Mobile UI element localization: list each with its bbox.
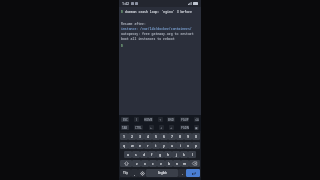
button[interactable]: ESC bbox=[121, 117, 129, 122]
button[interactable]: ↓ bbox=[159, 125, 164, 130]
staticText: ESC bbox=[123, 118, 128, 122]
staticText: autoproxy: free gateway.org to restart bbox=[121, 32, 194, 36]
button[interactable]: CTRL bbox=[134, 125, 143, 130]
staticText: m bbox=[183, 161, 187, 166]
staticText: → bbox=[170, 126, 173, 129]
staticText: r bbox=[147, 143, 149, 148]
staticText: y bbox=[163, 143, 165, 148]
button[interactable]: 9 bbox=[184, 133, 192, 140]
staticText: q bbox=[123, 143, 126, 148]
staticText: t bbox=[155, 143, 157, 148]
button[interactable]: 6 bbox=[160, 133, 168, 140]
staticText: , bbox=[134, 171, 135, 176]
staticText: j bbox=[176, 152, 177, 157]
button[interactable]: $ bbox=[119, 7, 201, 115]
button[interactable]: c bbox=[149, 160, 157, 167]
button[interactable]: . bbox=[178, 169, 186, 177]
button[interactable]: n bbox=[173, 160, 181, 167]
staticText: CTRL bbox=[135, 126, 142, 130]
staticText: e bbox=[139, 143, 141, 148]
button[interactable]: Shift bbox=[120, 160, 132, 167]
staticText: daemon crash loop: 'nginx' 3 before rest… bbox=[125, 10, 199, 14]
button[interactable]: Settings bbox=[138, 169, 146, 177]
button[interactable]: TAB bbox=[121, 125, 129, 130]
button[interactable]: ↑ bbox=[158, 117, 163, 122]
button[interactable]: p bbox=[192, 142, 200, 149]
button[interactable]: ← bbox=[149, 125, 154, 130]
button[interactable]: w bbox=[128, 142, 136, 149]
button[interactable]: l bbox=[188, 151, 196, 158]
button[interactable]: i bbox=[176, 142, 184, 149]
button[interactable]: ?1☺ bbox=[120, 169, 131, 177]
button[interactable]: e bbox=[136, 142, 144, 149]
staticText: / bbox=[136, 118, 138, 122]
button[interactable]: , bbox=[131, 169, 138, 177]
staticText: HOME bbox=[144, 118, 153, 122]
button[interactable]: / bbox=[134, 117, 139, 122]
staticText: c bbox=[152, 161, 154, 166]
button[interactable]: y bbox=[160, 142, 168, 149]
button[interactable]: PGDN bbox=[180, 125, 189, 130]
button[interactable]: 3 bbox=[136, 133, 144, 140]
button[interactable]: m bbox=[181, 160, 189, 167]
button[interactable]: q bbox=[120, 142, 128, 149]
staticText: boot all instances to reboot bbox=[121, 37, 175, 41]
button[interactable]: ▣ bbox=[194, 125, 199, 130]
button[interactable]: HOME bbox=[144, 117, 153, 122]
staticText: p bbox=[195, 143, 198, 148]
staticText: z bbox=[136, 161, 138, 166]
button[interactable]: g bbox=[156, 151, 164, 158]
button[interactable]: j bbox=[172, 151, 180, 158]
staticText: 0 bbox=[195, 134, 197, 139]
staticText: d bbox=[143, 152, 146, 157]
button[interactable]: 2 bbox=[128, 133, 136, 140]
button[interactable]: k bbox=[180, 151, 188, 158]
button[interactable]: 8 bbox=[176, 133, 184, 140]
button[interactable]: ⌫ bbox=[194, 117, 199, 122]
staticText: n bbox=[176, 161, 179, 166]
staticText: $ bbox=[121, 10, 125, 14]
button[interactable]: 7 bbox=[168, 133, 176, 140]
staticText: $ bbox=[121, 44, 123, 48]
staticText: l bbox=[192, 152, 193, 157]
button[interactable]: END bbox=[167, 117, 175, 122]
staticText: a bbox=[127, 152, 129, 157]
staticText: . bbox=[182, 171, 183, 176]
button[interactable]: x bbox=[141, 160, 149, 167]
staticText: k bbox=[183, 152, 185, 157]
button[interactable]: z bbox=[132, 160, 141, 167]
button[interactable]: Enter bbox=[186, 169, 200, 177]
staticText: ⌫ bbox=[195, 118, 199, 121]
staticText: 2 bbox=[131, 134, 133, 139]
button[interactable]: PGUP bbox=[180, 117, 189, 122]
button[interactable]: v bbox=[157, 160, 165, 167]
staticText: g bbox=[159, 152, 162, 157]
button[interactable]: 4 bbox=[144, 133, 152, 140]
button[interactable]: Backspace bbox=[189, 160, 200, 167]
button[interactable]: 1 bbox=[120, 133, 128, 140]
staticText: ↓ bbox=[160, 126, 163, 129]
staticText: ?1☺ bbox=[123, 171, 129, 175]
staticText: PGUP bbox=[181, 118, 189, 122]
button[interactable]: f bbox=[148, 151, 156, 158]
staticText: English bbox=[158, 171, 167, 175]
staticText: s bbox=[135, 152, 137, 157]
button[interactable]: b bbox=[165, 160, 173, 167]
staticText: instance: /var/lib/docker/containers/net… bbox=[121, 27, 199, 31]
button[interactable]: English bbox=[146, 169, 178, 177]
staticText: 6 bbox=[163, 134, 165, 139]
button[interactable]: h bbox=[164, 151, 172, 158]
button[interactable]: 5 bbox=[152, 133, 160, 140]
button[interactable]: u bbox=[168, 142, 176, 149]
button[interactable]: a bbox=[124, 151, 132, 158]
staticText: b bbox=[168, 161, 171, 166]
button[interactable]: r bbox=[144, 142, 152, 149]
button[interactable]: 0 bbox=[192, 133, 200, 140]
button[interactable]: t bbox=[152, 142, 160, 149]
button[interactable]: o bbox=[184, 142, 192, 149]
button[interactable]: d bbox=[140, 151, 148, 158]
staticText: ↑ bbox=[159, 118, 162, 121]
button[interactable]: s bbox=[132, 151, 140, 158]
staticText: 1 bbox=[123, 134, 125, 139]
button[interactable]: → bbox=[169, 125, 174, 130]
